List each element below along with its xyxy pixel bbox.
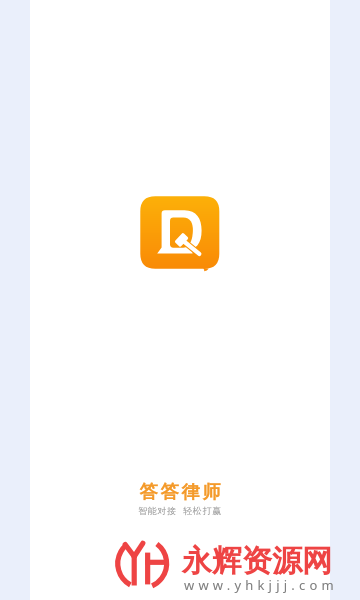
staticText: www.yhkjjj.com xyxy=(184,576,338,594)
staticText: 智能对接 轻松打赢 xyxy=(138,504,222,516)
staticText: 永辉资源网 xyxy=(182,542,332,580)
staticText: 答答律师 xyxy=(138,481,222,504)
